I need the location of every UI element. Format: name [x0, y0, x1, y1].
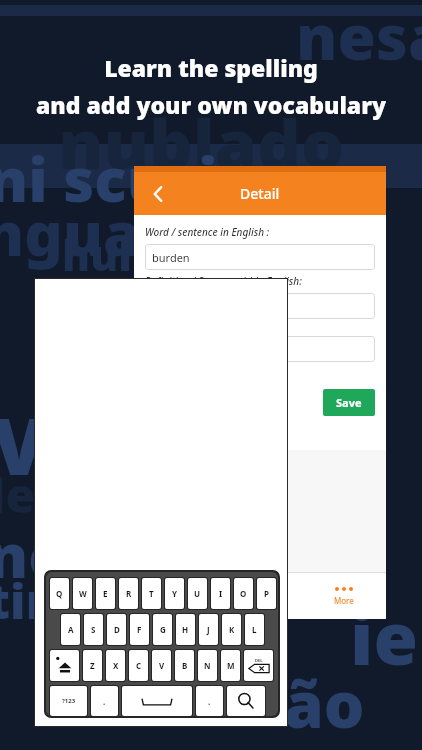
staticText: C [136, 660, 142, 671]
staticText: G [160, 624, 166, 635]
button[interactable]: P [257, 578, 276, 609]
button[interactable]: . [91, 686, 118, 716]
staticText: ão [284, 660, 365, 747]
staticText: X [113, 660, 119, 671]
staticText: and add your own vocabulary [36, 89, 386, 120]
staticText: ni scusi [0, 138, 218, 220]
staticText: E [103, 588, 108, 599]
button[interactable]: O [234, 578, 253, 609]
button[interactable]: ?123 [50, 686, 87, 716]
button[interactable]: More [302, 573, 386, 619]
staticText: More [334, 595, 354, 606]
button[interactable]: Save [323, 389, 375, 416]
staticText: le [0, 462, 36, 527]
button[interactable]: D [107, 614, 126, 645]
staticText: Definition / Synomym(s) in English: [145, 274, 302, 288]
button[interactable]: Z [83, 650, 102, 681]
staticText: Progress [243, 601, 277, 612]
staticText: burden [152, 250, 190, 265]
button[interactable]: Back [142, 178, 174, 210]
staticText: F [137, 624, 142, 635]
button[interactable]: Shift [50, 650, 79, 681]
button[interactable]: C [129, 650, 148, 681]
staticText: Learn the spelling [104, 52, 318, 83]
button[interactable]: Space [122, 686, 192, 716]
button[interactable]: Keyboard [46, 572, 278, 716]
button[interactable]: R [119, 578, 138, 609]
button[interactable]: B [175, 650, 194, 681]
staticText: nesa [296, 0, 422, 78]
button[interactable]: Search [227, 686, 265, 716]
button[interactable]: W [73, 578, 92, 609]
staticText: B [182, 660, 188, 671]
button[interactable]: Y [165, 578, 184, 609]
button[interactable]: I [211, 578, 230, 609]
staticText: DEL [255, 658, 263, 663]
staticText: ie [350, 588, 418, 686]
staticText: H [182, 624, 189, 635]
staticText: S [91, 624, 96, 635]
button[interactable]: M [221, 650, 240, 681]
button[interactable]: E [96, 578, 115, 609]
staticText: P [264, 588, 269, 599]
staticText: Q [56, 588, 63, 599]
staticText: tin [0, 568, 58, 633]
button[interactable]: N [198, 650, 217, 681]
button[interactable]: Progress [218, 573, 302, 619]
staticText: T [149, 588, 154, 599]
staticText: Vo [0, 392, 95, 498]
staticText: . [103, 696, 106, 707]
staticText: Detail [240, 184, 280, 203]
staticText: huh [62, 226, 147, 283]
button[interactable]: Detail [134, 172, 386, 215]
button[interactable]: . [196, 686, 223, 716]
staticText: K [229, 624, 235, 635]
staticText: V [159, 660, 165, 671]
button[interactable]: burden [145, 244, 375, 270]
button[interactable]: L [245, 614, 264, 645]
button[interactable] [145, 293, 375, 319]
button[interactable]: G [153, 614, 172, 645]
button[interactable]: Delete [244, 650, 273, 681]
staticText: . [208, 696, 211, 707]
staticText: ?123 [62, 697, 76, 705]
staticText: I [219, 588, 223, 599]
staticText: no [0, 514, 67, 596]
staticText: L [252, 624, 257, 635]
button[interactable]: Q [50, 578, 69, 609]
button[interactable]: H [176, 614, 195, 645]
button[interactable]: a daily basis can [145, 336, 375, 362]
staticText: nublado [58, 96, 345, 189]
staticText: M [227, 660, 235, 671]
button[interactable]: U [188, 578, 207, 609]
button[interactable]: T [142, 578, 161, 609]
button[interactable]: F [130, 614, 149, 645]
staticText: nguag [0, 192, 179, 274]
staticText: D [114, 624, 120, 635]
staticText: N [204, 660, 211, 671]
button[interactable]: S [84, 614, 103, 645]
staticText: R [126, 588, 132, 599]
button[interactable]: X [106, 650, 125, 681]
staticText: A [68, 624, 74, 635]
button[interactable]: K [222, 614, 241, 645]
staticText: O [240, 588, 247, 599]
button[interactable]: V [152, 650, 171, 681]
staticText: Word / sentence in English : [145, 225, 270, 239]
button[interactable]: J [199, 614, 218, 645]
button[interactable]: A [61, 614, 80, 645]
staticText: J [207, 624, 210, 635]
staticText: W [79, 588, 87, 599]
staticText: Y [172, 588, 178, 599]
staticText: Z [90, 660, 95, 671]
staticText: U [194, 588, 201, 599]
staticText: Save [336, 395, 362, 410]
